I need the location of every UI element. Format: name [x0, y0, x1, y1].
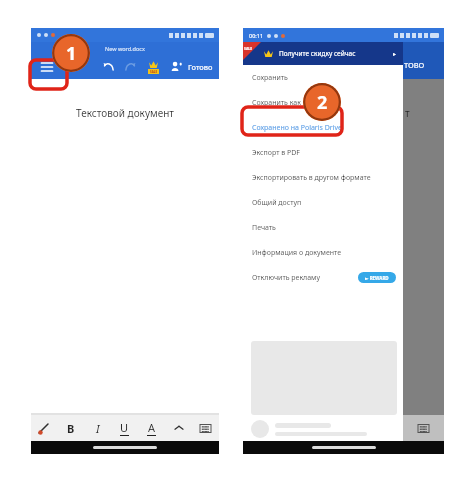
staticText: SALE [150, 70, 158, 74]
staticText: т [405, 106, 410, 120]
button[interactable]: pen [31, 415, 57, 441]
button[interactable]: Undo [99, 57, 118, 76]
staticText: Экспорт в PDF [252, 148, 300, 158]
button[interactable]: 1 [52, 34, 90, 72]
button[interactable]: SALE [243, 42, 403, 65]
button[interactable]: I [84, 415, 111, 441]
button[interactable]: Redo [121, 57, 140, 76]
staticText: SALE [244, 46, 253, 51]
staticText: I [96, 421, 100, 436]
staticText: ▸ [393, 50, 397, 57]
button[interactable]: Печать [243, 215, 403, 240]
staticText: Отключить рекламу [252, 273, 358, 283]
button[interactable]: Готово [188, 62, 213, 72]
staticText: U [120, 420, 129, 435]
button[interactable]: Keyboard [403, 415, 444, 441]
staticText: B [67, 421, 75, 436]
button[interactable]: Menu [36, 56, 57, 77]
button[interactable]: A [138, 415, 165, 441]
button[interactable]: Информация о документе [243, 240, 403, 265]
staticText: Общий доступ [252, 198, 302, 208]
staticText: A [148, 420, 156, 435]
staticText: Текстовой документ [76, 106, 174, 120]
button[interactable]: U [111, 415, 138, 441]
button[interactable]: Сохранить [243, 65, 403, 90]
staticText: 1 [66, 41, 77, 66]
button[interactable]: Сохранить как [243, 90, 403, 115]
staticText: Получите скидку сейчас [279, 49, 393, 58]
staticText: Информация о документе [252, 248, 342, 258]
button[interactable]: Экспорт в PDF [243, 140, 403, 165]
button[interactable]: Экспортировать в другом формате [243, 165, 403, 190]
button[interactable]: ^ [165, 415, 192, 441]
staticText: Печать [252, 223, 276, 233]
staticText: ТОВО [404, 60, 425, 70]
button[interactable]: ► REWARD [358, 272, 396, 283]
button[interactable]: 2 [303, 83, 341, 121]
staticText: Готово [188, 62, 213, 72]
staticText: Сохранить [252, 73, 288, 83]
button[interactable]: B [57, 415, 84, 441]
button[interactable]: Отключить рекламу [243, 265, 403, 290]
staticText: ► REWARD [365, 275, 389, 281]
staticText: Экспортировать в другом формате [252, 173, 371, 183]
staticText: Сохранить как [252, 98, 301, 108]
staticText: 2 [317, 90, 328, 115]
button[interactable]: Share [167, 57, 186, 76]
button[interactable]: Общий доступ [243, 190, 403, 215]
staticText: 00:11 [249, 32, 264, 39]
button[interactable]: kb [192, 415, 219, 441]
staticText: New word.docx [105, 45, 145, 52]
staticText: Сохранено на Polaris Drive [252, 123, 343, 133]
button[interactable]: Сохранено на Polaris Drive [243, 115, 403, 140]
button[interactable]: Premium [143, 56, 164, 77]
